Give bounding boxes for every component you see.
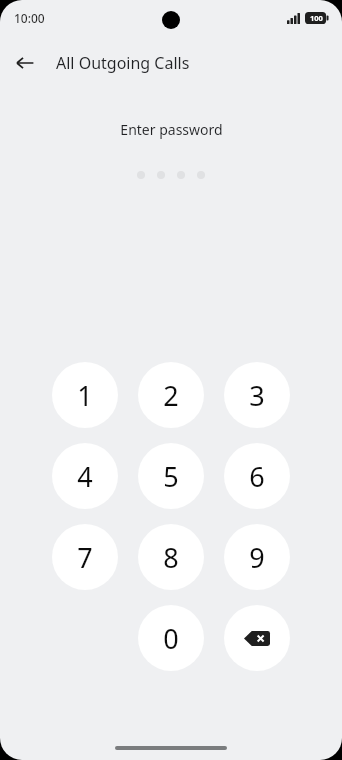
button[interactable]: 2 — [138, 362, 204, 428]
staticText: 1 — [77, 377, 93, 414]
staticText: 3 — [249, 377, 265, 414]
button[interactable]: 1 — [52, 362, 118, 428]
button[interactable]: 4 — [52, 443, 118, 509]
button[interactable]: Backspace — [224, 605, 290, 671]
button[interactable]: 0 — [138, 605, 204, 671]
button[interactable]: 7 — [52, 524, 118, 590]
staticText: 7 — [77, 539, 93, 576]
button[interactable]: 3 — [224, 362, 290, 428]
staticText: 9 — [249, 539, 265, 576]
button[interactable]: Back — [6, 44, 44, 82]
staticText: 2 — [163, 377, 179, 414]
button[interactable]: 8 — [138, 524, 204, 590]
staticText: 4 — [77, 458, 93, 495]
staticText: 0 — [163, 620, 179, 657]
staticText: Enter password — [120, 120, 223, 139]
button[interactable]: 6 — [224, 443, 290, 509]
button[interactable]: 9 — [224, 524, 290, 590]
staticText: 8 — [163, 539, 179, 576]
staticText: 10:00 — [14, 10, 45, 26]
staticText: 6 — [249, 458, 265, 495]
staticText: 5 — [163, 458, 179, 495]
button[interactable]: 5 — [138, 443, 204, 509]
staticText: All Outgoing Calls — [56, 52, 190, 74]
staticText: 100 — [310, 13, 323, 23]
